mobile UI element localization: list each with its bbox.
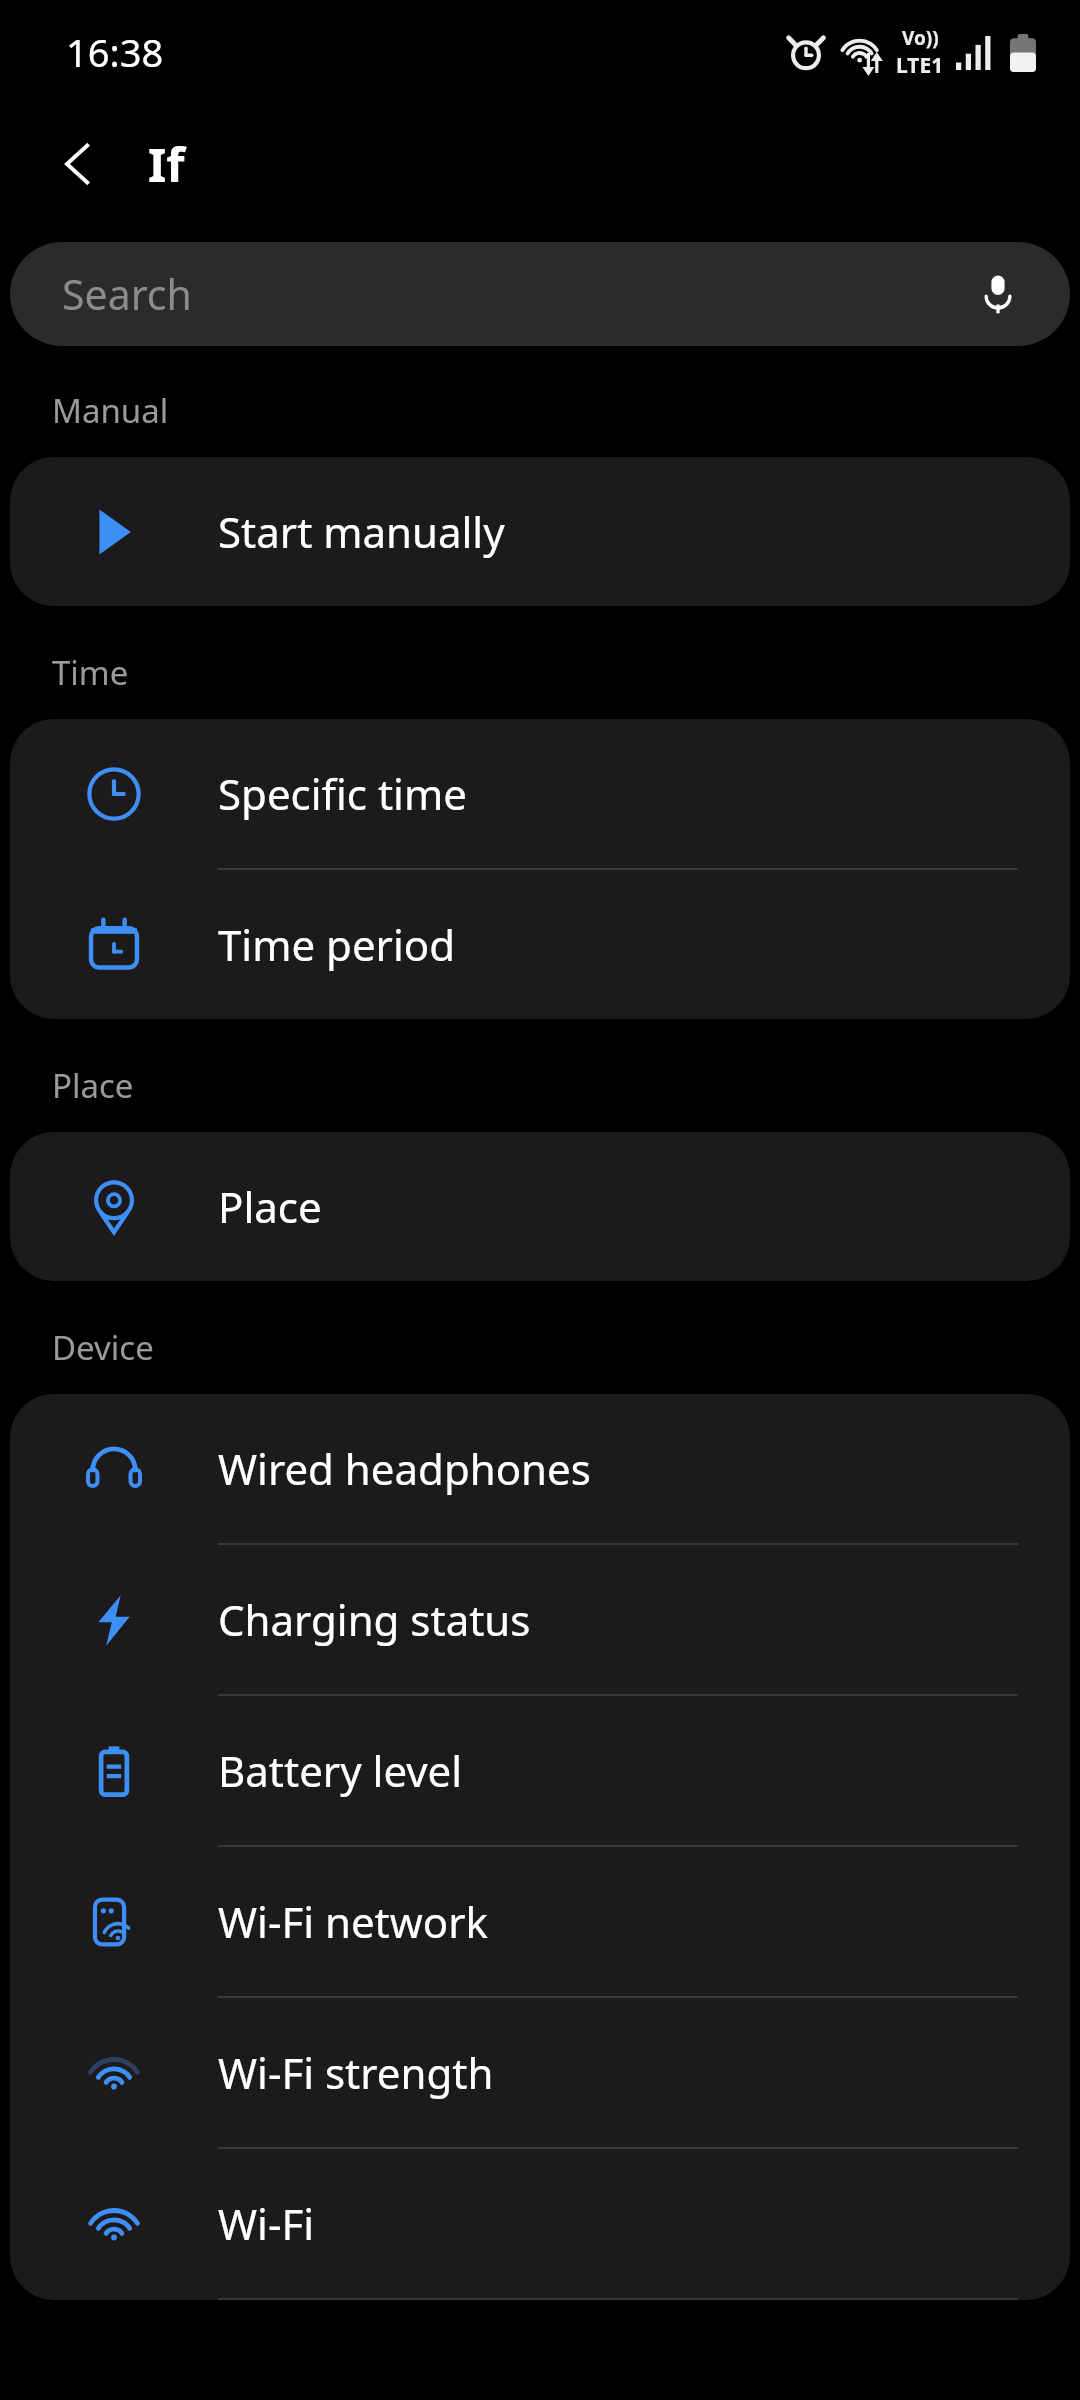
button[interactable]: Place — [10, 1132, 1070, 1281]
button[interactable]: Wi-Fi — [10, 2149, 1070, 2298]
button[interactable]: Specific time — [10, 719, 1070, 868]
staticText: Charging status — [218, 1591, 531, 1648]
staticText: Specific time — [218, 765, 467, 822]
button[interactable]: Search — [10, 242, 1070, 346]
staticText: Place — [218, 1178, 322, 1235]
staticText: 16:38 — [66, 26, 164, 78]
button[interactable]: Time period — [10, 870, 1070, 1019]
button[interactable]: Battery level — [10, 1696, 1070, 1845]
staticText: LTE1 — [896, 51, 944, 80]
staticText: Battery level — [218, 1742, 463, 1799]
staticText: If — [148, 132, 185, 196]
staticText: Wi-Fi — [218, 2195, 315, 2252]
staticText: Place — [52, 1063, 134, 1108]
button[interactable]: Back — [30, 116, 126, 212]
staticText: Search — [62, 266, 972, 322]
button[interactable]: Wired headphones — [10, 1394, 1070, 1543]
staticText: Vo)) — [902, 25, 939, 51]
button[interactable]: Voice search — [972, 268, 1024, 320]
button[interactable]: Charging status — [10, 1545, 1070, 1694]
staticText: Time — [52, 650, 129, 695]
button[interactable]: Start manually — [10, 457, 1070, 606]
staticText: Device — [52, 1325, 154, 1370]
staticText: Wi-Fi strength — [218, 2044, 494, 2101]
staticText: Time period — [218, 916, 456, 973]
staticText: Wired headphones — [218, 1440, 591, 1497]
button[interactable]: Wi-Fi strength — [10, 1998, 1070, 2147]
staticText: Manual — [52, 388, 169, 433]
staticText: Wi-Fi network — [218, 1893, 488, 1950]
staticText: Start manually — [218, 503, 505, 560]
button[interactable]: Wi-Fi network — [10, 1847, 1070, 1996]
